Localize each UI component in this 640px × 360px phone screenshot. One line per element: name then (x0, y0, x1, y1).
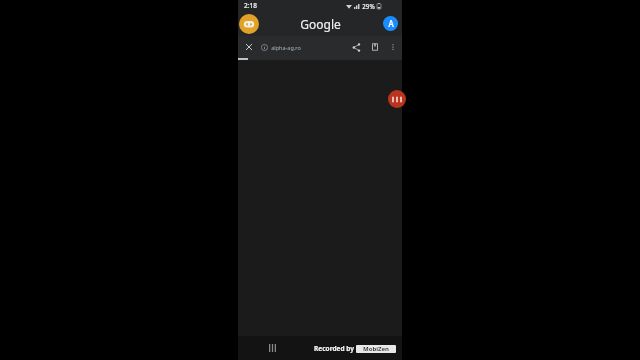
staticText: Google (300, 16, 341, 32)
button[interactable]: Recents (264, 340, 280, 356)
button[interactable]: Page badge (388, 90, 406, 108)
staticText: 2:18 (244, 1, 257, 10)
staticText: MobiZen (363, 345, 389, 353)
button[interactable]: Account avatar (239, 14, 259, 34)
staticText: alpha-ag.ro (271, 44, 301, 51)
staticText: Recorded by (314, 344, 354, 353)
button[interactable]: Google account (383, 16, 398, 31)
button[interactable]: More options (386, 40, 400, 54)
button[interactable]: Close (241, 39, 257, 55)
staticText: 29% (362, 2, 375, 10)
button[interactable]: Bookmark (367, 39, 383, 55)
staticText: A (388, 18, 394, 29)
button[interactable]: Site information (260, 43, 268, 51)
button[interactable]: Share (348, 39, 364, 55)
